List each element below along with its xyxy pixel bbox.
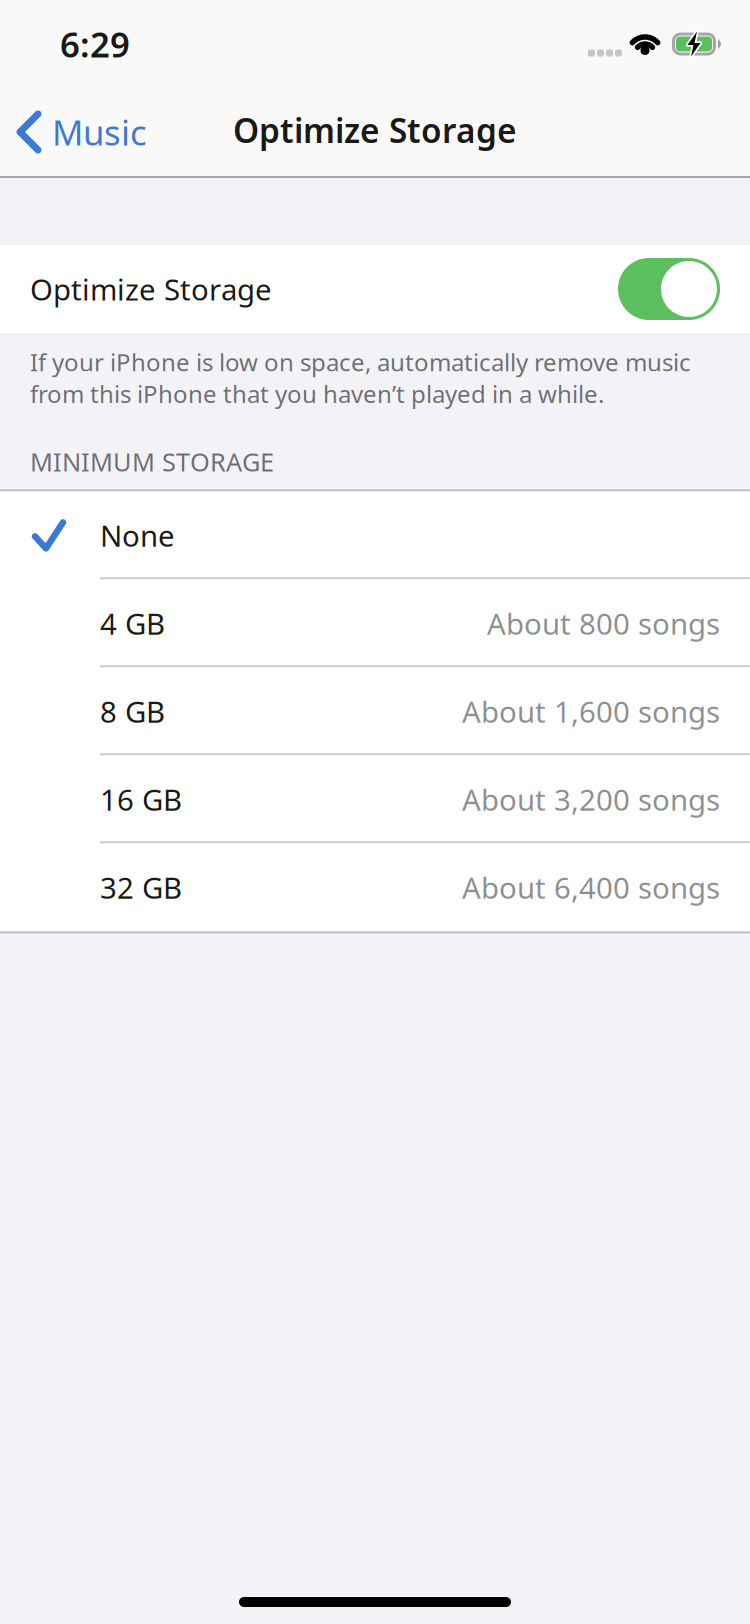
staticText: About 1,600 songs <box>462 692 720 731</box>
button[interactable]: 8 GB <box>0 667 750 755</box>
button[interactable]: Back to Music <box>0 109 147 155</box>
staticText: 4 GB <box>100 604 165 643</box>
staticText: MINIMUM STORAGE <box>30 445 274 478</box>
button[interactable]: Optimize Storage <box>0 245 750 333</box>
staticText: Optimize Storage <box>233 108 517 152</box>
staticText: 8 GB <box>100 692 165 731</box>
staticText: 16 GB <box>100 780 182 819</box>
staticText: About 6,400 songs <box>462 868 720 907</box>
staticText: About 800 songs <box>487 604 720 643</box>
staticText: If your iPhone is low on space, automati… <box>30 346 691 378</box>
button[interactable]: 32 GB <box>0 843 750 931</box>
staticText: Music <box>52 109 147 155</box>
staticText: About 3,200 songs <box>462 780 720 819</box>
staticText: Optimize Storage <box>30 269 272 308</box>
staticText: 32 GB <box>100 868 182 907</box>
staticText: None <box>100 516 175 555</box>
staticText: from this iPhone that you haven’t played… <box>30 378 604 410</box>
button[interactable]: None <box>0 491 750 579</box>
staticText: 6:29 <box>60 21 130 67</box>
button[interactable]: 16 GB <box>0 755 750 843</box>
button[interactable]: 4 GB <box>0 579 750 667</box>
